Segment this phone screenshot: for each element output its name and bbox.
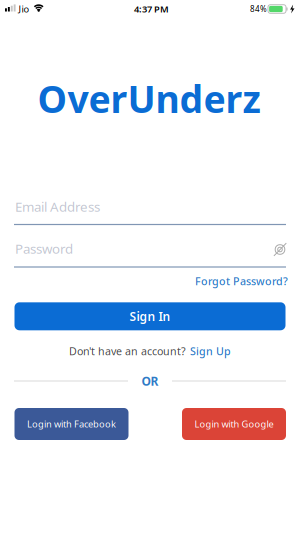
button[interactable]: Sign In	[14, 302, 285, 330]
staticText: Login with Facebook	[27, 418, 116, 430]
button[interactable]: Forgot Password?	[195, 274, 288, 288]
staticText: OR	[141, 373, 158, 389]
button[interactable]: Email Address	[14, 194, 286, 225]
button[interactable]: Sign Up	[190, 344, 231, 358]
button[interactable]: Login with Google	[182, 408, 286, 440]
staticText: 84%	[250, 4, 267, 14]
staticText: Login with Google	[194, 418, 273, 430]
staticText: Password	[15, 240, 73, 257]
button[interactable]: Password	[14, 237, 286, 268]
staticText: 4:37 PM	[134, 3, 169, 15]
button[interactable]: Login with Facebook	[14, 408, 128, 440]
staticText: Jio	[18, 3, 29, 15]
staticText: Don't have an account?	[69, 344, 186, 358]
staticText: Email Address	[15, 198, 100, 215]
staticText: Sign In	[129, 308, 170, 324]
staticText: Sign Up	[190, 344, 231, 358]
staticText: Forgot Password?	[195, 274, 288, 288]
button[interactable]: Show Password	[269, 238, 291, 260]
staticText: OverUnderz	[37, 74, 260, 123]
